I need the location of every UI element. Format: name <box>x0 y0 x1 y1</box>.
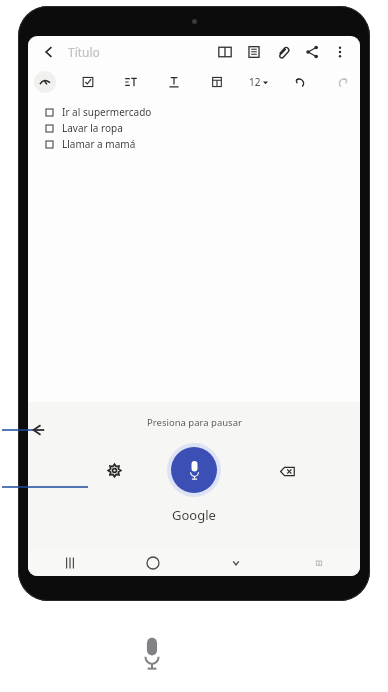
button[interactable]: Lavar la ropa <box>46 120 360 136</box>
button[interactable]: Settings <box>104 460 124 480</box>
button[interactable]: Checklist <box>77 71 99 93</box>
staticText: Google <box>172 506 216 524</box>
button[interactable]: Stop voice input <box>167 443 221 497</box>
button[interactable]: Redo <box>332 71 354 93</box>
button[interactable]: Change keyboard <box>277 550 360 576</box>
button[interactable]: Paragraph format <box>120 71 142 93</box>
staticText: 12 <box>249 75 261 89</box>
staticText: Llamar a mamá <box>62 137 136 151</box>
staticText: Lavar la ropa <box>62 121 123 135</box>
button[interactable]: Backspace <box>276 460 298 482</box>
button[interactable]: Text style <box>34 71 56 93</box>
button[interactable]: Microphone <box>141 636 163 670</box>
button[interactable]: Reading view <box>215 42 235 62</box>
button[interactable]: Attach <box>273 42 293 62</box>
button[interactable]: Insert <box>206 71 228 93</box>
button[interactable]: Share <box>302 42 322 62</box>
staticText: Ir al supermercado <box>62 105 152 119</box>
staticText: Título <box>68 44 100 60</box>
button[interactable]: Undo <box>289 71 311 93</box>
button[interactable]: Font size <box>249 75 268 89</box>
button[interactable]: Home <box>111 550 194 576</box>
button[interactable]: Hide keyboard <box>194 550 277 576</box>
button[interactable]: Text format <box>163 71 185 93</box>
button[interactable]: Navigate up <box>38 41 60 63</box>
button[interactable]: Recents <box>28 550 111 576</box>
button[interactable]: More options <box>330 42 350 62</box>
button[interactable]: Note list <box>244 42 264 62</box>
button[interactable]: Back <box>29 422 45 438</box>
button[interactable]: Ir al supermercado <box>46 104 360 120</box>
button[interactable]: Llamar a mamá <box>46 136 360 152</box>
staticText: Presiona para pausar <box>147 416 242 429</box>
